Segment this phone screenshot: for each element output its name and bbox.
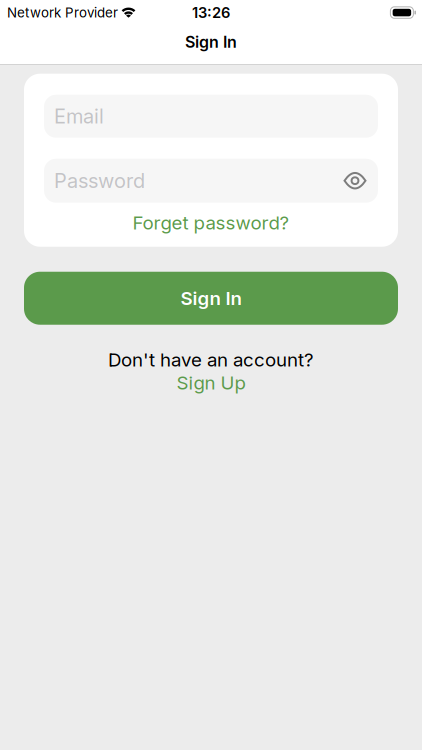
staticText: Sign In <box>180 287 241 309</box>
staticText: Email <box>54 104 104 128</box>
staticText: Don't have an account? <box>108 349 314 371</box>
staticText: Sign In <box>185 33 237 51</box>
staticText: 13:26 <box>192 4 230 21</box>
button[interactable]: Password <box>44 159 378 203</box>
staticText: Forget password? <box>132 212 289 234</box>
staticText: Password <box>54 169 145 192</box>
staticText: Sign Up <box>176 372 245 394</box>
button[interactable]: Sign In <box>24 272 398 325</box>
staticText: Network Provider <box>7 5 118 20</box>
button[interactable]: Sign Up <box>176 372 245 394</box>
button[interactable]: Email <box>44 95 378 138</box>
button[interactable]: Show password <box>344 172 366 190</box>
button[interactable]: Forget password? <box>132 212 289 234</box>
